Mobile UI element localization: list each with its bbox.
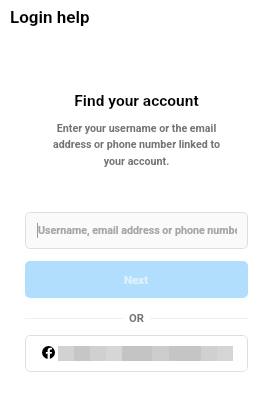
- button[interactable]: Next: [25, 261, 248, 298]
- button[interactable]: Login help: [0, 0, 273, 34]
- staticText: Find your account: [0, 92, 273, 110]
- staticText: OR: [129, 312, 144, 325]
- staticText: Username, email address or phone number: [38, 224, 237, 237]
- staticText: Enter your username or the email address…: [44, 122, 229, 168]
- staticText: Login help: [10, 7, 90, 27]
- button[interactable]: Username, email address or phone number: [25, 212, 248, 249]
- staticText: Next: [124, 273, 149, 286]
- button[interactable]: Continue with Facebook: [25, 335, 248, 372]
